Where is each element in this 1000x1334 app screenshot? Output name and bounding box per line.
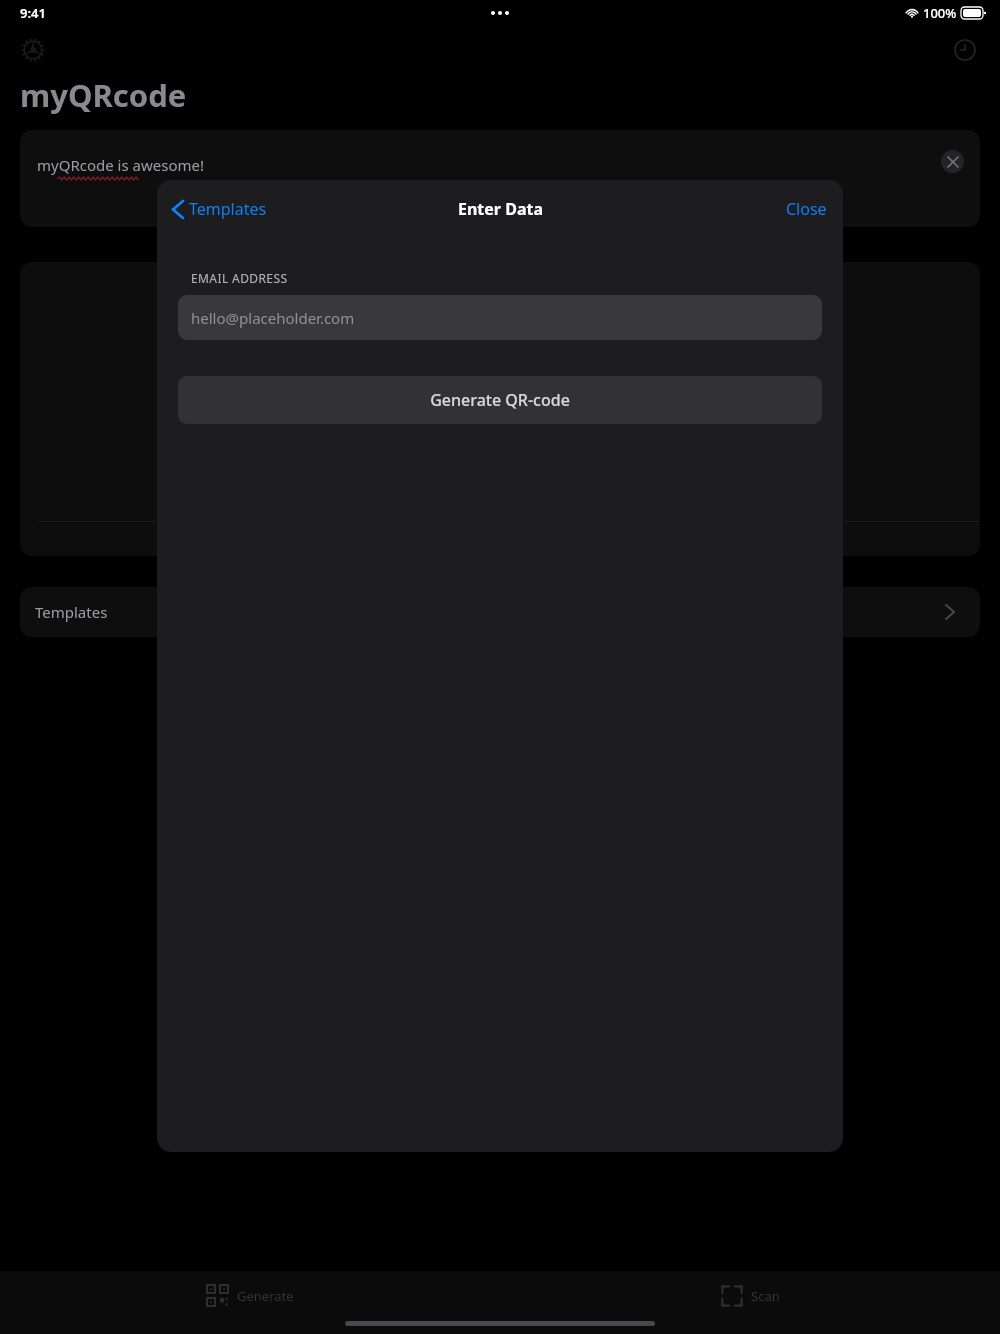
staticText: EMAIL ADDRESS [191, 270, 288, 286]
button[interactable]: Generate [0, 1271, 500, 1321]
staticText: Close [786, 198, 827, 220]
staticText: myQRcode is awesome! [37, 155, 204, 175]
staticText: Generate QR-code [430, 389, 570, 411]
button[interactable]: Scan [500, 1271, 1000, 1321]
button[interactable]: History [947, 32, 983, 68]
staticText: 9:41 [20, 4, 46, 22]
staticText: Templates [35, 602, 108, 622]
button[interactable]: hello@placeholder.com [178, 295, 822, 340]
button[interactable]: Templates [20, 587, 980, 637]
button[interactable]: Settings [15, 32, 51, 68]
button[interactable]: Generate QR-code [178, 376, 822, 424]
staticText: hello@placeholder.com [191, 308, 355, 328]
staticText: Generate [237, 1287, 294, 1305]
button[interactable]: myQRcode is awesome! [20, 130, 980, 227]
staticText: 100% [923, 4, 957, 22]
staticText: myQRcode [20, 74, 187, 116]
staticText: Enter Data [458, 198, 543, 220]
staticText: Templates [189, 198, 267, 220]
button[interactable]: Clear text [941, 150, 964, 173]
button[interactable]: Close [780, 194, 833, 224]
staticText: Scan [751, 1287, 780, 1305]
button[interactable]: Templates [167, 194, 273, 224]
